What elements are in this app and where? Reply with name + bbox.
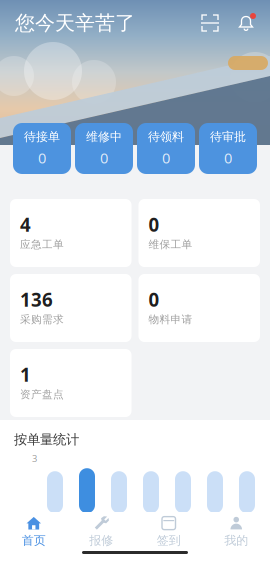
button[interactable]: 待审批 (199, 123, 257, 174)
staticText: 应急工单 (20, 238, 64, 251)
staticText: 1 (20, 362, 31, 387)
staticText: 0 (38, 148, 46, 168)
staticText: 待领料 (148, 129, 184, 144)
button[interactable]: 0 (138, 199, 260, 267)
staticText: 物料申请 (148, 313, 192, 326)
staticText: 0 (162, 148, 170, 168)
button[interactable]: Scan code (201, 14, 219, 32)
staticText: 我的 (224, 533, 248, 548)
button[interactable]: 签到 (135, 516, 202, 548)
staticText: 待接单 (24, 129, 60, 144)
button[interactable]: 136 (10, 274, 131, 342)
staticText: 136 (20, 287, 53, 312)
button[interactable]: 维修中 (75, 123, 133, 174)
staticText: 维修中 (86, 129, 122, 144)
button[interactable]: 首页 (0, 516, 67, 548)
button[interactable]: 待领料 (137, 123, 195, 174)
button[interactable]: 待接单 (13, 123, 71, 174)
button[interactable]: 4 (10, 199, 131, 267)
staticText: 签到 (157, 533, 181, 548)
staticText: 资产盘点 (20, 388, 64, 401)
staticText: 4 (20, 212, 31, 237)
staticText: 采购需求 (20, 313, 64, 326)
staticText: 0 (224, 148, 232, 168)
button[interactable]: 报修 (67, 516, 135, 548)
staticText: 0 (100, 148, 108, 168)
button[interactable]: 我的 (202, 516, 270, 548)
staticText: 0 (148, 287, 159, 312)
staticText: 报修 (89, 533, 113, 548)
staticText: 待审批 (210, 129, 246, 144)
staticText: 您今天辛苦了 (15, 11, 135, 35)
button[interactable]: 1 (10, 349, 131, 417)
staticText: 首页 (22, 533, 46, 548)
staticText: 3 (32, 452, 37, 465)
staticText: 按单量统计 (14, 431, 79, 448)
button[interactable]: 0 (138, 274, 260, 342)
staticText: 维保工单 (148, 238, 192, 251)
staticText: 0 (148, 212, 159, 237)
button[interactable]: Notifications (237, 14, 255, 32)
